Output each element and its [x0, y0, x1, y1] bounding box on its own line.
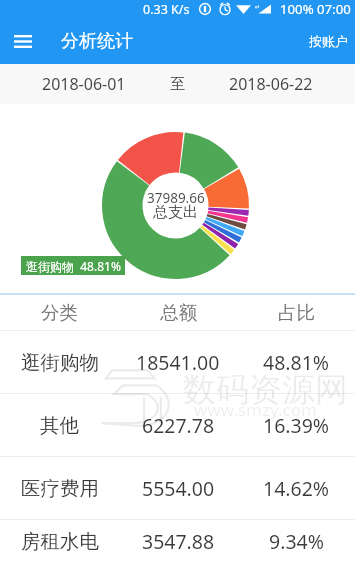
staticText: 逛街购物: [21, 350, 99, 375]
staticText: 3547.88: [142, 528, 215, 555]
staticText: 其他: [40, 413, 79, 438]
staticText: 占比: [278, 301, 315, 324]
staticText: 至: [170, 75, 185, 94]
staticText: 5554.00: [142, 475, 215, 502]
staticText: 总支出: [153, 203, 198, 222]
button[interactable]: 2018-06-01: [0, 64, 168, 104]
staticText: 按账户: [309, 33, 348, 49]
button[interactable]: 按账户: [302, 18, 355, 64]
staticText: 9.34%: [269, 528, 324, 555]
staticText: 2018-06-01: [42, 73, 126, 95]
button[interactable]: Open navigation menu: [9, 27, 37, 55]
staticText: 总额: [160, 301, 197, 324]
staticText: 48.81%: [263, 349, 330, 376]
staticText: 医疗费用: [21, 476, 99, 501]
staticText: 6227.78: [142, 412, 215, 439]
button[interactable]: 2018-06-22: [186, 64, 355, 104]
staticText: 37989.66: [147, 189, 205, 207]
staticText: 100% 07:00: [280, 0, 351, 18]
staticText: www.smzy.com: [194, 398, 317, 421]
staticText: 分析统计: [61, 30, 133, 53]
button[interactable]: 房租水电: [0, 520, 355, 563]
staticText: 房租水电: [21, 529, 99, 554]
button[interactable]: 医疗费用: [0, 457, 355, 519]
staticText: 逛街购物 48.81%: [26, 258, 121, 274]
staticText: 16.39%: [263, 412, 330, 439]
staticText: 2018-06-22: [229, 73, 313, 95]
button[interactable]: 逛街购物: [0, 331, 355, 393]
staticText: 14.62%: [263, 475, 330, 502]
button[interactable]: 其他: [0, 394, 355, 456]
staticText: 分类: [41, 301, 78, 324]
staticText: 数码资源网: [183, 369, 348, 411]
staticText: 0.33 K/s: [143, 1, 190, 18]
staticText: 18541.00: [136, 349, 220, 376]
